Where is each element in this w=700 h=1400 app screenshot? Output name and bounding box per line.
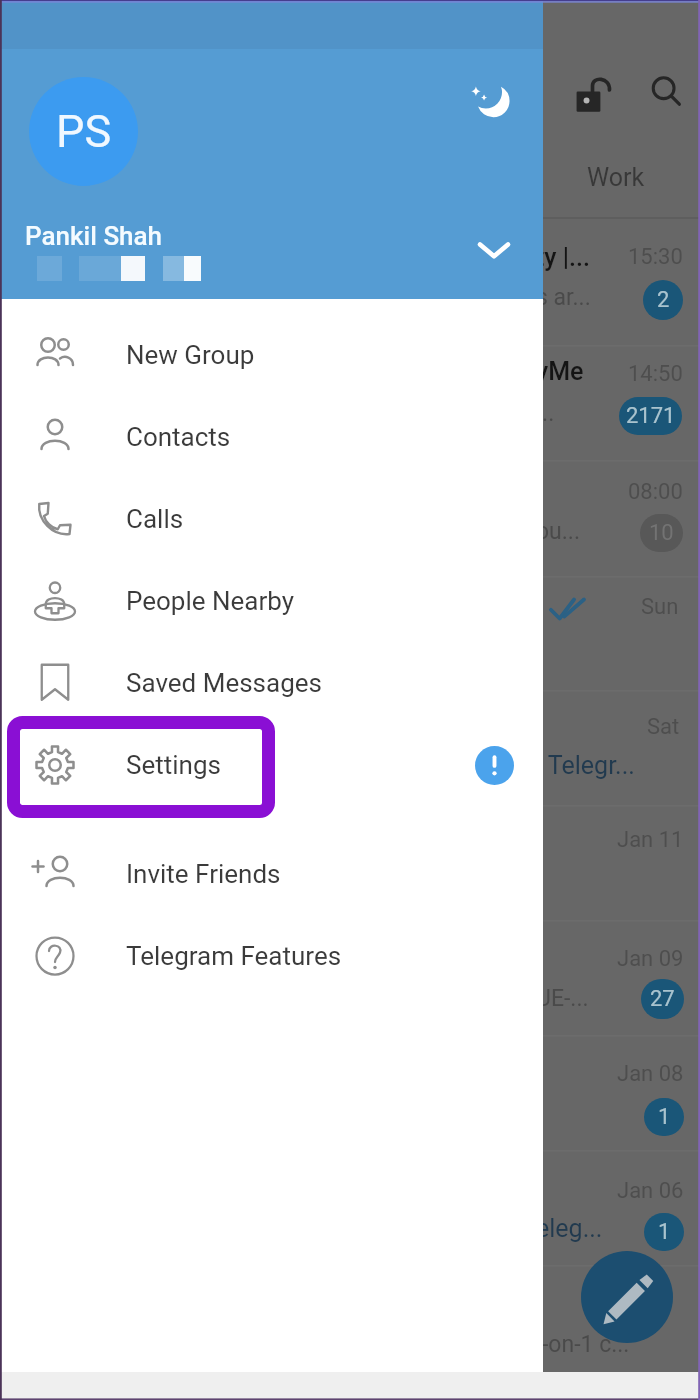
staticText: Calls: [126, 504, 184, 534]
staticText: Jan 11: [617, 827, 684, 853]
staticText: Jan 06: [617, 1178, 684, 1204]
staticText: Jan 08: [617, 1061, 684, 1087]
button[interactable]: New Group: [0, 314, 543, 396]
staticText: Saved Messages: [126, 668, 322, 698]
staticText: 27: [650, 986, 675, 1012]
staticText: Sat: [647, 714, 680, 740]
button[interactable]: Profile photo: [29, 77, 138, 186]
staticText: Telegram Features: [126, 941, 342, 971]
staticText: Sun: [641, 594, 679, 620]
button[interactable]: Expand accounts: [466, 221, 522, 277]
button[interactable]: Calls: [0, 478, 543, 560]
staticText: Work: [587, 163, 645, 192]
button[interactable]: Work: [556, 150, 676, 208]
staticText: Contacts: [126, 422, 231, 452]
button[interactable]: Saved Messages: [0, 642, 543, 724]
button[interactable]: People Nearby: [0, 560, 543, 642]
staticText: 2: [657, 287, 670, 313]
staticText: 15:30: [628, 244, 683, 270]
staticText: 14:50: [628, 361, 683, 387]
staticText: PS: [56, 105, 112, 158]
staticText: s ar...: [536, 284, 591, 311]
button[interactable]: Search: [651, 78, 683, 110]
staticText: ...: [536, 400, 555, 427]
staticText: Pankil Shah: [25, 221, 163, 251]
staticText: 08:00: [628, 479, 683, 505]
button[interactable]: Telegram Features: [0, 915, 543, 997]
button[interactable]: Invite Friends: [0, 833, 543, 915]
staticText: yMe: [536, 357, 584, 386]
staticText: -on-1 c...: [542, 1331, 630, 1358]
staticText: New Group: [126, 340, 255, 370]
staticText: ty |...: [536, 243, 590, 272]
staticText: 1: [658, 1104, 671, 1130]
staticText: Jan 09: [617, 946, 684, 972]
staticText: 2171: [626, 403, 676, 429]
staticText: People Nearby: [126, 586, 295, 616]
staticText: eleg...: [536, 1214, 603, 1243]
button[interactable]: Settings: [0, 724, 543, 806]
button[interactable]: Contacts: [0, 396, 543, 478]
staticText: ou...: [536, 518, 580, 545]
staticText: l Telegr...: [536, 751, 635, 780]
staticText: Settings: [126, 750, 221, 780]
staticText: 10: [649, 520, 674, 546]
button[interactable]: Night mode: [462, 72, 520, 130]
staticText: 1: [658, 1219, 671, 1245]
staticText: Invite Friends: [126, 859, 281, 889]
button[interactable]: New message: [581, 1251, 673, 1343]
button[interactable]: Unlock: [575, 76, 610, 111]
staticText: UE-...: [536, 985, 589, 1012]
